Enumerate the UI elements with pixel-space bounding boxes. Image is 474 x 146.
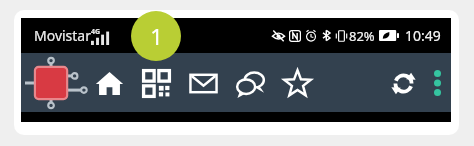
staticText: 4G bbox=[91, 27, 101, 37]
button[interactable]: Scan QR code bbox=[138, 59, 174, 107]
button[interactable]: Favorites bbox=[279, 59, 315, 107]
button[interactable]: More options bbox=[423, 58, 451, 108]
button[interactable]: Chat bbox=[232, 59, 268, 107]
button[interactable]: Mail bbox=[185, 59, 221, 107]
staticText: 82% bbox=[349, 27, 375, 45]
staticText: 1 bbox=[150, 21, 163, 51]
button[interactable]: Home bbox=[91, 59, 127, 107]
button[interactable]: 1 bbox=[131, 11, 181, 61]
staticText: 10:49 bbox=[405, 26, 441, 45]
button[interactable]: Refresh bbox=[383, 58, 423, 108]
staticText: Movistar bbox=[34, 26, 92, 45]
button[interactable]: App logo bbox=[25, 55, 87, 111]
